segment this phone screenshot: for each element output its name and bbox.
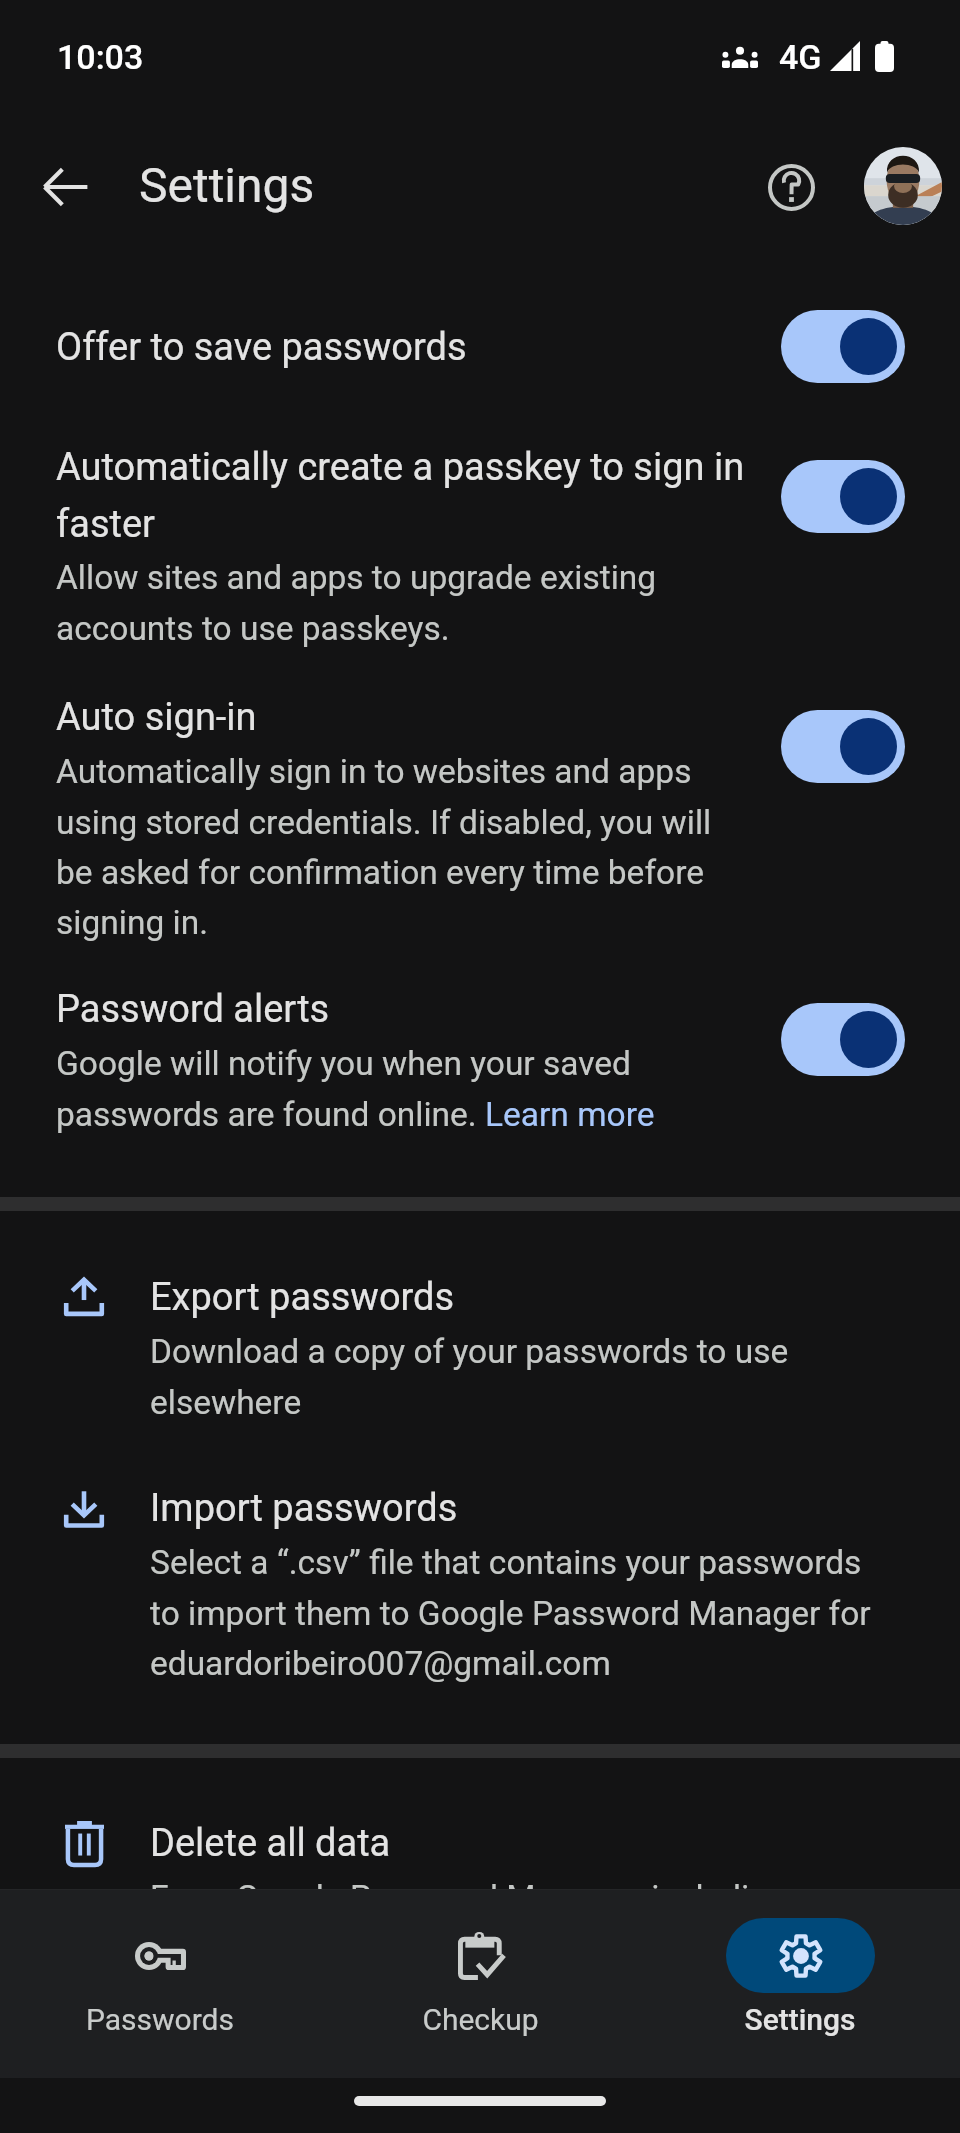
button[interactable]: Password alerts	[0, 987, 960, 1134]
staticText: Passwords	[86, 2002, 234, 2037]
staticText: 4G	[779, 37, 822, 77]
button[interactable]: Toggle on	[781, 1003, 905, 1076]
staticText: 10:03	[57, 37, 144, 77]
button[interactable]: Toggle on	[781, 310, 905, 383]
staticText: Automatically create a passkey to sign i…	[56, 445, 756, 546]
staticText: Allow sites and apps to upgrade existing…	[56, 558, 756, 648]
staticText: Settings	[139, 157, 315, 213]
staticText: Export passwords	[150, 1275, 455, 1320]
staticText: Offer to save passwords	[56, 325, 467, 370]
button[interactable]: Settings	[640, 1890, 960, 2078]
button[interactable]: Export passwords	[0, 1275, 960, 1422]
staticText: Select a “.csv” file that contains your …	[150, 1543, 885, 1683]
staticText: From Google Password Manager, including …	[150, 1878, 885, 1968]
button[interactable]: Back	[22, 143, 110, 231]
button[interactable]: Auto sign-in	[0, 695, 960, 942]
staticText: Download a copy of your passwords to use…	[150, 1332, 885, 1422]
staticText: Auto sign-in	[56, 695, 257, 740]
button[interactable]: Toggle on	[781, 710, 905, 783]
staticText: Automatically sign in to websites and ap…	[56, 752, 756, 942]
staticText: Google will notify you when your saved p…	[56, 1044, 756, 1134]
button[interactable]: Passwords	[0, 1890, 320, 2078]
button[interactable]: Toggle on	[781, 460, 905, 533]
button[interactable]: Offer to save passwords	[0, 325, 960, 370]
staticText: Checkup	[422, 2002, 539, 2037]
staticText: Password alerts	[56, 987, 330, 1032]
staticText: Settings	[744, 2002, 856, 2037]
button[interactable]: Help	[747, 143, 835, 231]
button[interactable]: Import passwords	[0, 1486, 960, 1683]
button[interactable]: Automatically create a passkey to sign i…	[0, 445, 960, 648]
staticText: Import passwords	[150, 1486, 458, 1531]
staticText: Delete all data	[150, 1821, 391, 1866]
button[interactable]: Account	[864, 147, 942, 225]
button[interactable]: Checkup	[320, 1890, 640, 2078]
button[interactable]: Delete all data	[0, 1821, 960, 1968]
